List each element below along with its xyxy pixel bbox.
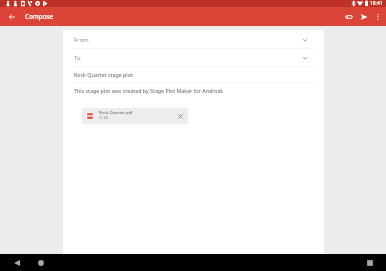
button[interactable]: To — [63, 49, 324, 66]
button[interactable]: More options — [371, 10, 384, 23]
button[interactable]: Recent apps — [361, 254, 378, 271]
button[interactable]: Remove attachment — [173, 109, 187, 123]
button[interactable]: Rock Quartet.pdf — [82, 108, 188, 124]
button[interactable]: From — [63, 31, 324, 48]
staticText: 18:41 — [370, 0, 383, 7]
staticText: 52 KB — [99, 115, 109, 120]
button[interactable]: Attach file — [341, 9, 356, 24]
button[interactable]: Send — [356, 9, 371, 24]
button[interactable]: Back — [8, 254, 25, 271]
staticText: Compose — [25, 12, 54, 21]
button[interactable]: Rock Quartet stage plot — [63, 67, 324, 82]
staticText: Rock Quartet.pdf — [99, 110, 133, 116]
staticText: From — [74, 36, 89, 44]
staticText: To — [74, 54, 81, 62]
button[interactable]: Home — [32, 254, 49, 271]
staticText: Rock Quartet stage plot — [74, 71, 133, 78]
button[interactable]: Navigate up — [4, 9, 19, 24]
button[interactable]: This stage plot was created by Stage Plo… — [63, 83, 324, 97]
staticText: This stage plot was created by Stage Plo… — [74, 87, 224, 94]
